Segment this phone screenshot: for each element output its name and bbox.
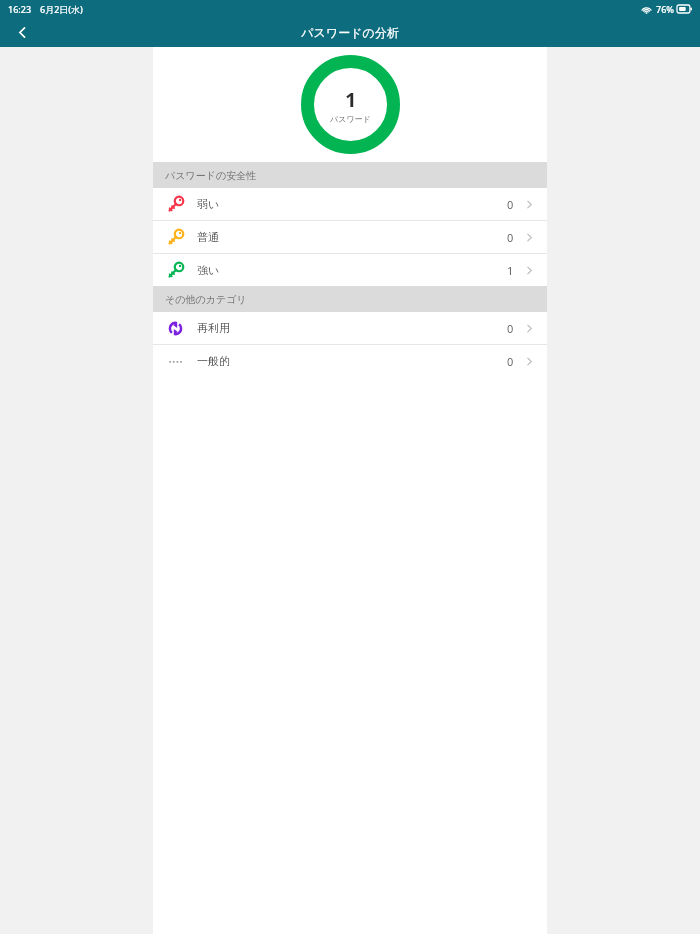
staticText: 再利用 (197, 321, 230, 335)
button[interactable]: 一般的 (153, 345, 547, 377)
button[interactable]: 強い (153, 254, 547, 286)
staticText: その他のカテゴリ (165, 293, 247, 306)
staticText: 1 (507, 263, 514, 278)
staticText: 0 (507, 321, 514, 336)
button[interactable]: 戻る (0, 18, 44, 47)
staticText: 普通 (197, 230, 219, 244)
button[interactable]: 普通 (153, 221, 547, 254)
staticText: 16:23 (8, 3, 32, 15)
staticText: 0 (507, 197, 514, 212)
staticText: 0 (507, 230, 514, 245)
staticText: パスワード (330, 114, 371, 124)
staticText: 6月2日(水) (40, 3, 83, 15)
staticText: パスワードの分析 (301, 25, 399, 40)
staticText: 一般的 (197, 354, 230, 368)
staticText: パスワードの安全性 (165, 169, 257, 182)
staticText: 76% (656, 3, 674, 15)
button[interactable]: 弱い (153, 188, 547, 221)
staticText: 0 (507, 354, 514, 369)
staticText: 弱い (197, 197, 220, 211)
staticText: 強い (197, 263, 220, 277)
staticText: 1 (345, 86, 357, 113)
button[interactable]: 再利用 (153, 312, 547, 345)
